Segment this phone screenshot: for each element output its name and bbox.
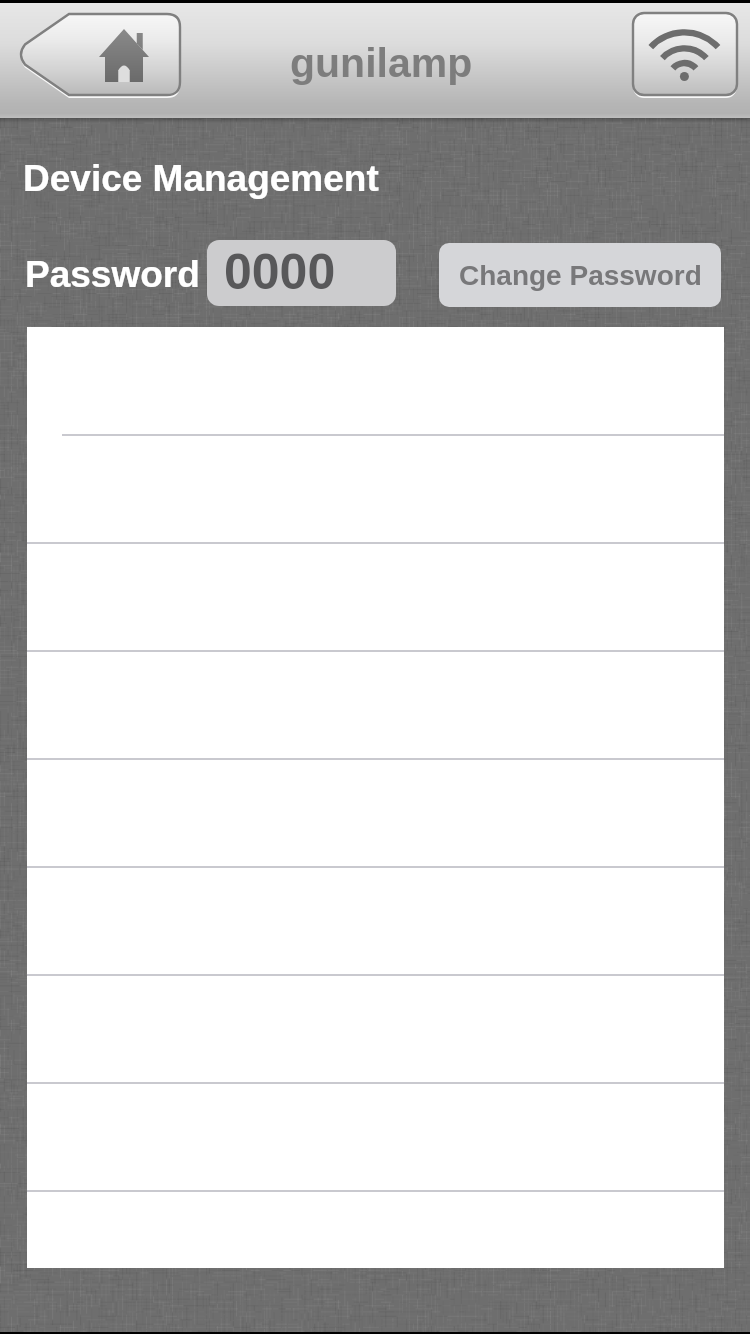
staticText: Device Management [23,158,379,199]
button[interactable]: Change Password [439,243,721,307]
button[interactable]: Wi-Fi [633,13,737,98]
button[interactable]: 0000 [207,240,396,306]
staticText: 0000 [224,244,336,300]
staticText: Change Password [459,260,702,291]
staticText: Password [25,254,200,295]
staticText: gunilamp [290,40,473,86]
button[interactable]: Home [17,14,180,95]
